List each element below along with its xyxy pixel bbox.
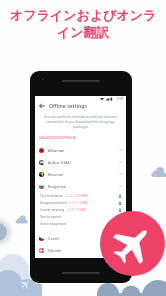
staticText: Bulgarian [48, 184, 67, 189]
staticText: You can perform translation without inte… [42, 114, 119, 129]
button[interactable]: Bulgarian [35, 180, 126, 192]
staticText: Bosnian [48, 172, 64, 177]
staticText: Arabic (UAE) [48, 160, 71, 165]
staticText: v.1.2.1 (120 MB) [66, 194, 89, 198]
staticText: Albanian [48, 148, 65, 153]
button[interactable]: Albanian [35, 144, 126, 156]
staticText: Image translation [40, 201, 67, 205]
button[interactable]: Bosnian [35, 168, 126, 180]
button[interactable]: Back [35, 101, 49, 110]
button[interactable]: Back [35, 101, 126, 110]
staticText: 9:41 [117, 96, 124, 101]
staticText: Offline settings [49, 102, 88, 109]
staticText: オフラインおよびオンライン翻訳 [4, 7, 162, 41]
staticText: AVAILABLE FOR DOWNLOAD [39, 136, 77, 140]
staticText: Voice recognition [40, 222, 66, 226]
button[interactable]: Czech [35, 232, 126, 244]
button[interactable]: Image translation [35, 199, 126, 206]
staticText: Lexical meaning [40, 208, 65, 212]
button[interactable]: Text to speech [35, 213, 126, 220]
staticText: Czech [48, 236, 60, 241]
staticText: Text translation [40, 194, 64, 198]
staticText: v.1.1.1 (1 MB) [67, 208, 86, 212]
staticText: Danish [48, 248, 62, 253]
button[interactable]: Airplane mode [100, 211, 165, 276]
button[interactable]: Lexical meaning [35, 206, 126, 213]
button[interactable]: Arabic (UAE) [35, 156, 126, 168]
button[interactable]: Text translation [35, 192, 126, 199]
staticText: v.1.1.1 (2 MB) [69, 201, 88, 205]
button[interactable]: Voice recognition [35, 220, 126, 227]
staticText: Text to speech [40, 215, 62, 219]
button[interactable]: Danish [35, 244, 126, 256]
